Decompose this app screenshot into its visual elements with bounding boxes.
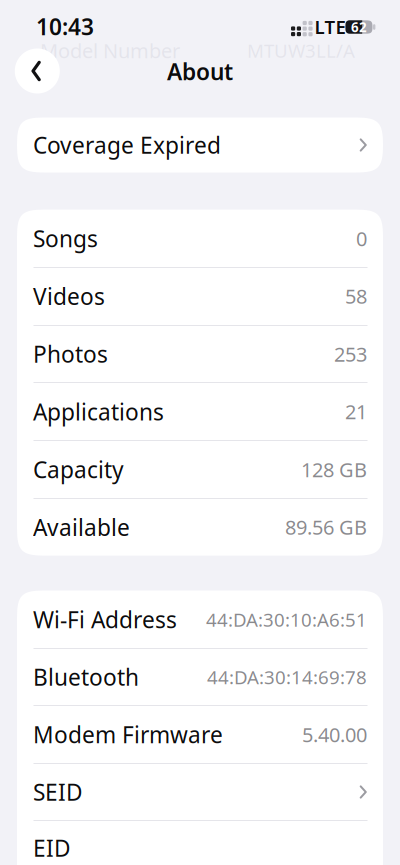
button[interactable]: Back [15,48,60,93]
staticText: 10:43 [36,11,94,41]
staticText: Model Number [40,37,180,64]
staticText: 58 [345,283,367,309]
staticText: 44:DA:30:10:A6:51 [206,607,367,632]
staticText: MTUW3LL/A [247,38,355,63]
staticText: About [167,56,233,86]
staticText: Photos [33,339,108,369]
staticText: 89.56 GB [285,514,367,540]
staticText: Songs [33,223,98,253]
button[interactable]: SEID [33,763,367,820]
staticText: SEID [33,777,83,807]
staticText: Wi-Fi Address [33,604,177,634]
staticText: LTE [314,14,345,39]
staticText: Modem Firmware [33,719,223,749]
staticText: Capacity [33,454,124,484]
staticText: Coverage Expired [33,130,221,160]
button[interactable]: Coverage Expired [33,117,367,172]
staticText: Bluetooth [33,662,139,692]
staticText: 5.40.00 [302,721,367,748]
staticText: EID [33,833,71,863]
staticText: 21 [345,398,367,425]
staticText: 0 [356,225,367,252]
staticText: Videos [33,281,105,311]
staticText: Available [33,512,130,542]
staticText: 44:DA:30:14:69:78 [207,665,367,689]
staticText: 62 [351,18,367,36]
staticText: 128 GB [301,456,367,483]
staticText: Applications [33,396,164,427]
staticText: 253 [334,341,367,367]
